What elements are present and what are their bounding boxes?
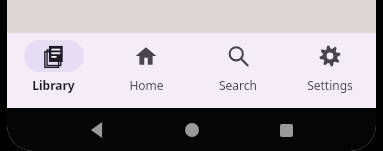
button[interactable]: Search: [192, 33, 284, 108]
button[interactable]: Recent apps: [266, 110, 306, 150]
staticText: Search: [219, 77, 257, 93]
button[interactable]: Home: [172, 110, 212, 150]
button[interactable]: Back: [77, 110, 117, 150]
button[interactable]: Library: [7, 33, 100, 108]
staticText: Settings: [307, 77, 353, 93]
staticText: Home: [129, 77, 164, 93]
button[interactable]: Home: [100, 33, 192, 108]
button[interactable]: Settings: [284, 33, 376, 108]
staticText: Library: [32, 77, 75, 93]
